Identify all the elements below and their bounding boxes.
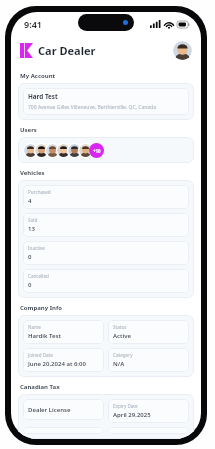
button[interactable]: User bbox=[35, 144, 48, 157]
button[interactable]: Joined Date bbox=[23, 348, 104, 372]
staticText: 0 bbox=[28, 281, 32, 289]
staticText: Cancelled bbox=[28, 273, 49, 279]
button[interactable]: User bbox=[57, 144, 70, 157]
button[interactable]: Inactive bbox=[23, 241, 189, 265]
button[interactable]: User bbox=[79, 144, 92, 157]
staticText: Active bbox=[113, 332, 131, 340]
button[interactable]: Hard Test bbox=[18, 83, 194, 120]
staticText: Category bbox=[113, 352, 133, 358]
staticText: 9:41 bbox=[24, 18, 42, 30]
staticText: Company Info bbox=[20, 304, 63, 312]
button[interactable]: User bbox=[46, 144, 59, 157]
staticText: Joined Date bbox=[28, 352, 53, 358]
staticText: 700 Avenue Gilles Villeneuve, Berthiervi… bbox=[28, 104, 156, 111]
button[interactable]: Category bbox=[108, 348, 189, 372]
button[interactable]: Expiry Date bbox=[108, 399, 189, 423]
button[interactable]: Dealer License bbox=[23, 399, 104, 420]
button[interactable]: Sold bbox=[23, 213, 189, 237]
staticText: Users bbox=[20, 126, 37, 134]
button[interactable]: User bbox=[24, 144, 37, 157]
button[interactable]: Profile bbox=[173, 41, 192, 60]
button[interactable]: Name bbox=[18, 315, 194, 377]
staticText: April 29,2025 bbox=[113, 411, 151, 419]
staticText: My Account bbox=[20, 72, 56, 80]
button[interactable]: Hard Test bbox=[23, 88, 189, 115]
staticText: Expiry Date bbox=[113, 403, 138, 409]
button[interactable]: +10 bbox=[89, 143, 104, 158]
button[interactable]: Name bbox=[23, 320, 104, 344]
staticText: Inactive bbox=[28, 245, 45, 251]
staticText: Status bbox=[113, 324, 127, 330]
staticText: Purchased bbox=[28, 189, 51, 195]
staticText: 0 bbox=[28, 253, 32, 261]
staticText: 4 bbox=[28, 197, 32, 205]
staticText: N/A bbox=[113, 360, 125, 368]
button[interactable]: Cancelled bbox=[23, 269, 189, 293]
staticText: 13 bbox=[28, 225, 35, 233]
staticText: June 20,2024 at 6:00 bbox=[28, 360, 86, 368]
staticText: Dealer License bbox=[28, 406, 71, 414]
staticText: Car Dealer bbox=[38, 43, 96, 58]
button[interactable]: CRA HST GST Number bbox=[23, 427, 104, 434]
button[interactable]: Dealer License bbox=[18, 394, 194, 439]
staticText: Canadian Tax bbox=[20, 383, 60, 391]
button[interactable]: Car Dealer bbox=[20, 43, 96, 58]
button[interactable]: User bbox=[68, 144, 81, 157]
staticText: +10 bbox=[93, 148, 101, 154]
button[interactable]: Purchased bbox=[18, 180, 194, 298]
button[interactable]: Purchased bbox=[23, 185, 189, 209]
button[interactable]: Status bbox=[108, 320, 189, 344]
button[interactable]: User bbox=[18, 137, 194, 163]
button[interactable]: Business No. bbox=[108, 427, 189, 434]
staticText: Name bbox=[28, 324, 41, 330]
staticText: Hard Test bbox=[28, 92, 58, 101]
staticText: Vehicles bbox=[20, 169, 45, 177]
staticText: Hardik Test bbox=[28, 332, 61, 340]
staticText: Sold bbox=[28, 217, 38, 223]
